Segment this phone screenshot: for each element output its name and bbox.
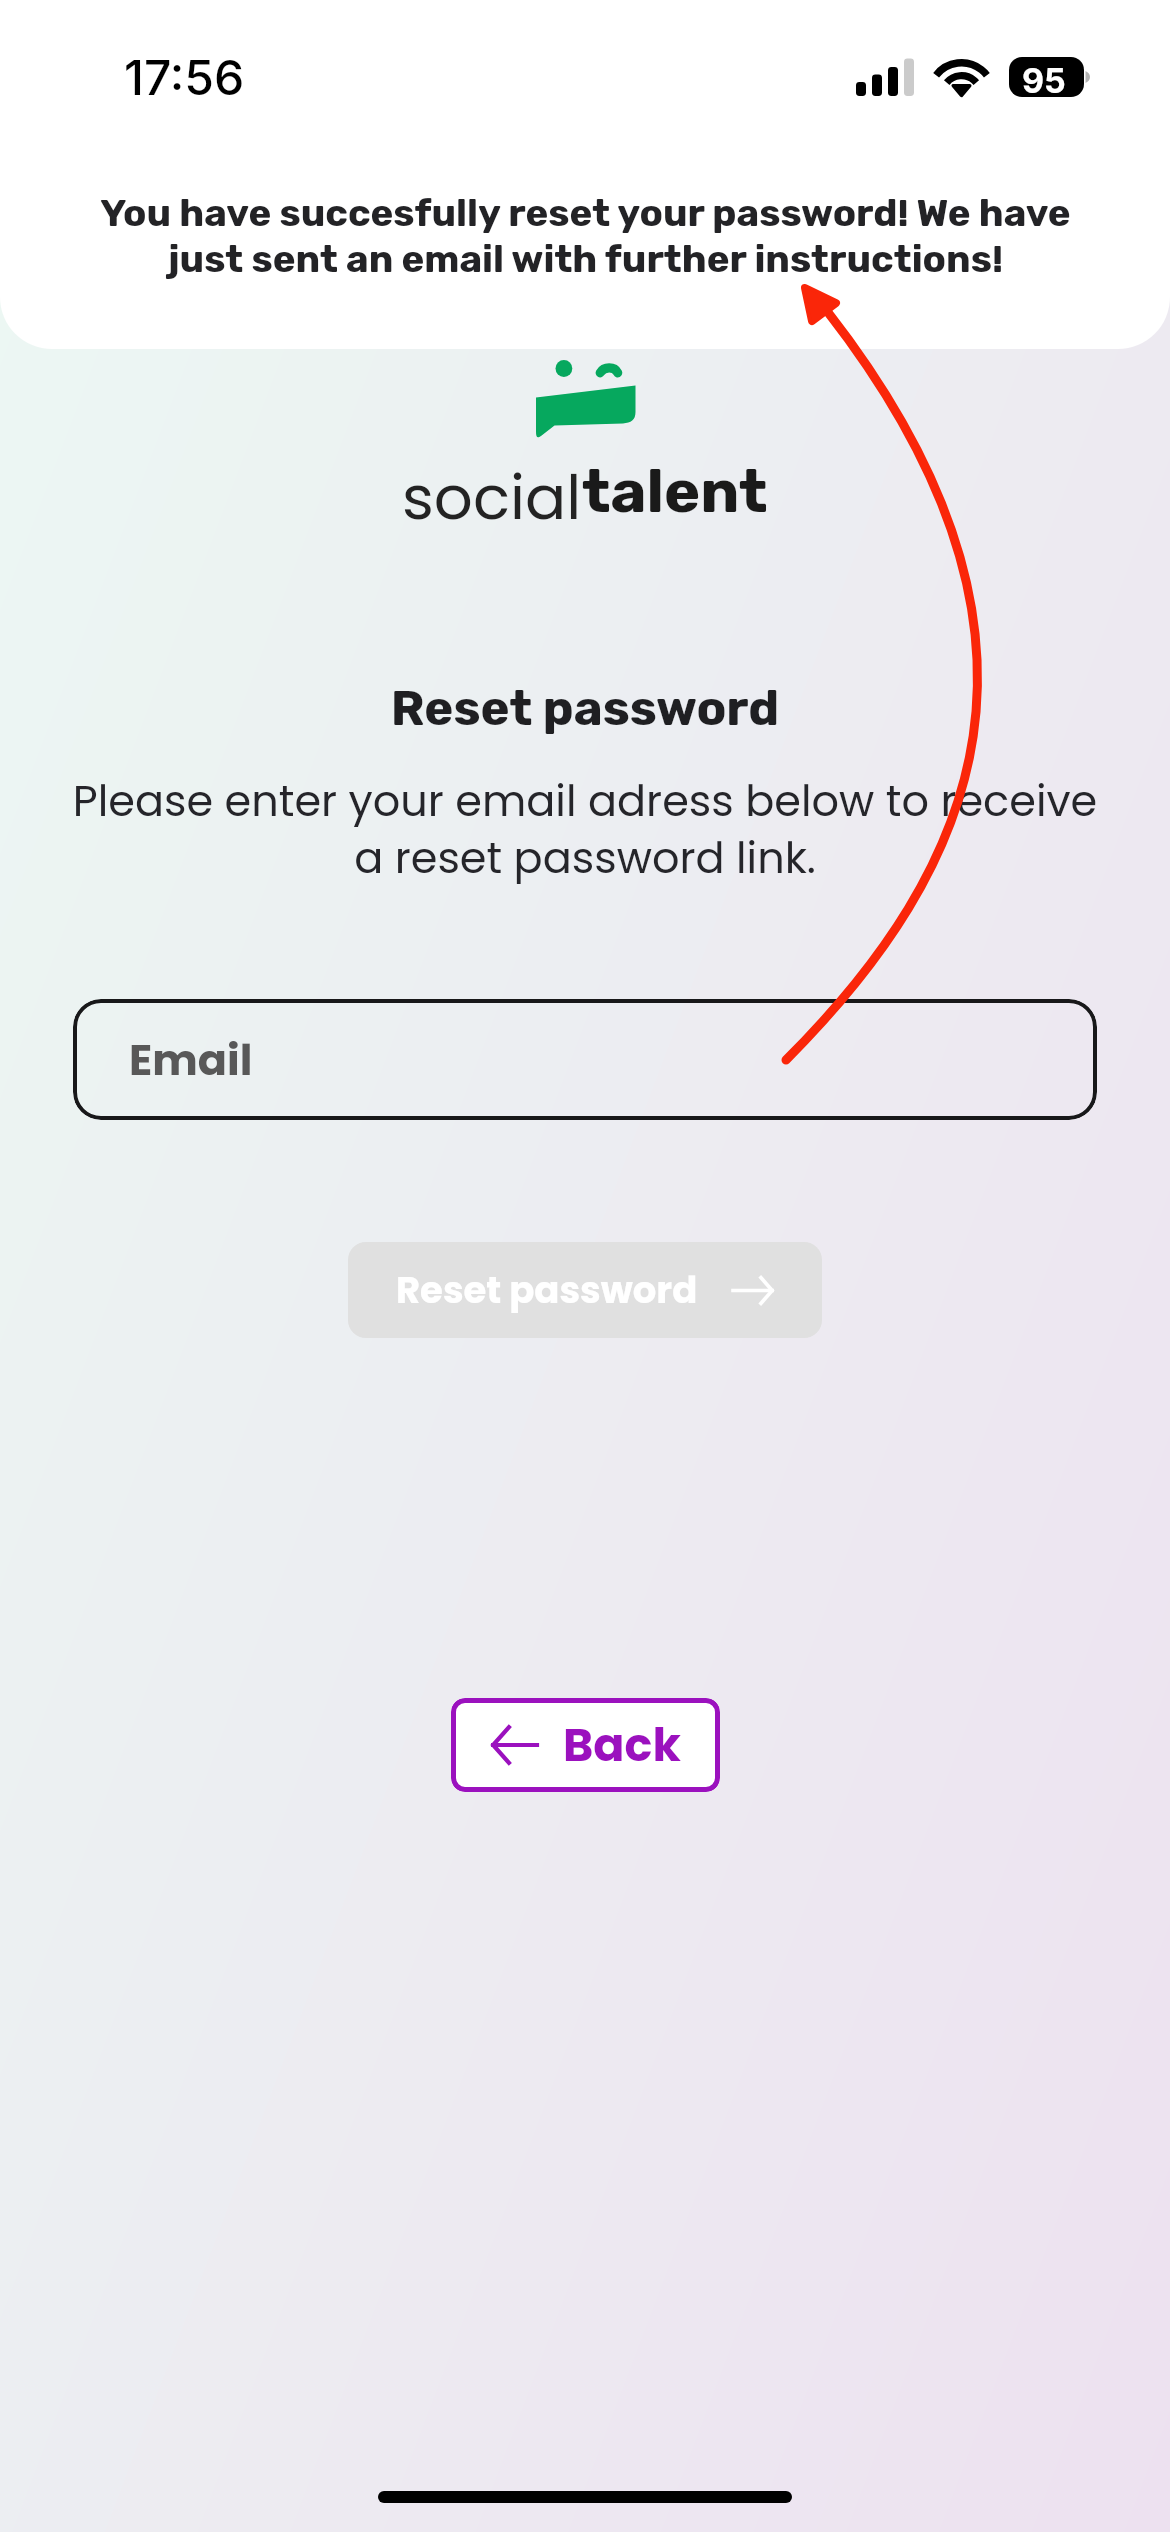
staticText: 95 [1022,60,1066,101]
staticText: talent [582,455,768,527]
staticText: social [402,455,582,540]
staticText: You have succesfully reset your password… [83,190,1088,282]
staticText: Please enter your email adress below to … [60,771,1110,888]
button[interactable]: Reset password [348,1242,822,1338]
other: Wi-Fi [934,56,989,97]
button[interactable]: Back [451,1698,720,1792]
staticText: Reset password [396,1264,698,1316]
staticText: Back [563,1713,681,1777]
staticText: 17:56 [124,48,245,106]
staticText: Email [129,1030,253,1090]
staticText: Reset password [0,679,1170,737]
other: Cellular signal [856,58,915,96]
other: Annotation arrow [0,0,1170,2532]
other: Battery 95 percent [1009,57,1091,97]
button[interactable]: Email [73,999,1097,1120]
